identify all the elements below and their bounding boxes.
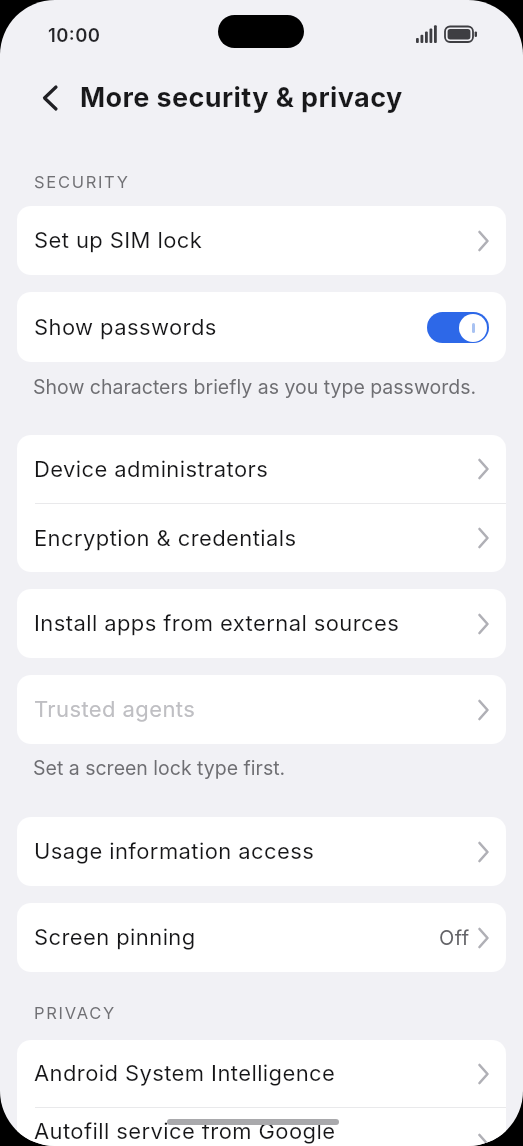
staticText: Android System Intelligence <box>34 1060 336 1087</box>
staticText: Off <box>439 926 470 950</box>
staticText: Set a screen lock type first. <box>33 756 286 780</box>
staticText: Show passwords <box>34 314 217 341</box>
button[interactable]: Usage information access <box>17 817 506 886</box>
staticText: Device administrators <box>34 456 269 483</box>
staticText: Install apps from external sources <box>34 610 400 637</box>
staticText: Autofill service from Google <box>34 1118 336 1145</box>
staticText: Set up SIM lock <box>34 227 203 254</box>
button[interactable]: Autofill service from Google <box>17 1108 506 1146</box>
button[interactable]: Show passwords <box>17 292 506 362</box>
button[interactable]: Set up SIM lock <box>17 206 506 275</box>
staticText: SECURITY <box>34 172 130 192</box>
button[interactable]: Install apps from external sources <box>17 589 506 658</box>
button[interactable]: Trusted agents <box>17 675 506 744</box>
staticText: 10:00 <box>48 24 101 46</box>
button[interactable]: Android System Intelligence <box>17 1040 506 1107</box>
staticText: Trusted agents <box>34 696 196 723</box>
button[interactable]: Device administrators <box>17 435 506 503</box>
button[interactable]: Screen pinning <box>17 903 506 972</box>
staticText: Encryption & credentials <box>34 525 297 552</box>
button[interactable]: Encryption & credentials <box>17 504 506 572</box>
staticText: More security & privacy <box>80 81 403 114</box>
staticText: Screen pinning <box>34 924 196 951</box>
staticText: Show characters briefly as you type pass… <box>33 375 477 399</box>
staticText: Usage information access <box>34 838 315 865</box>
staticText: PRIVACY <box>34 1003 116 1023</box>
button[interactable] <box>30 78 70 118</box>
